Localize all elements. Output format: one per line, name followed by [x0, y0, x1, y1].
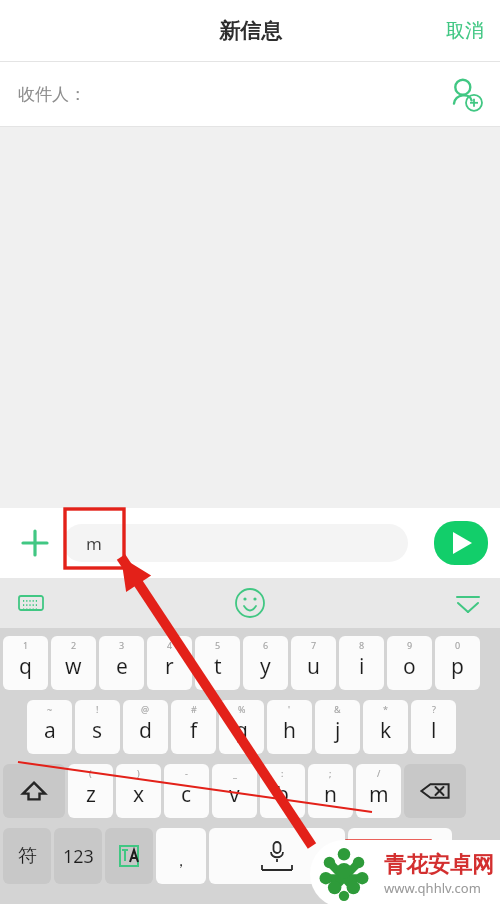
staticText: # [191, 703, 197, 715]
button[interactable]: Send [434, 521, 488, 565]
staticText: / [377, 767, 381, 779]
staticText: % [238, 703, 246, 715]
staticText: m [369, 780, 389, 809]
button[interactable]: Shift [3, 764, 65, 818]
staticText: & [334, 703, 341, 715]
staticText: 6 [263, 639, 269, 651]
staticText: o [403, 652, 416, 681]
button[interactable]: : [260, 764, 305, 818]
button[interactable]: % [219, 700, 264, 754]
staticText: r [165, 652, 174, 681]
button[interactable]: ! [75, 700, 120, 754]
button[interactable]: Add attachment [12, 520, 58, 566]
button[interactable]: ; [308, 764, 353, 818]
staticText: x [133, 780, 145, 809]
button[interactable]: 取消 [430, 5, 500, 57]
button[interactable]: ? [411, 700, 456, 754]
staticText: ? [432, 703, 436, 715]
button[interactable]: Backspace [404, 764, 466, 818]
staticText: e [116, 652, 128, 681]
staticText: ! [96, 703, 99, 715]
staticText: ) [137, 767, 140, 779]
button[interactable]: @ [123, 700, 168, 754]
button[interactable]: 符 [3, 828, 51, 884]
button[interactable]: 5 [195, 636, 240, 690]
button[interactable]: 4 [147, 636, 192, 690]
button[interactable]: ' [267, 700, 312, 754]
staticText: d [139, 716, 152, 745]
staticText: h [283, 716, 296, 745]
staticText: 3 [119, 639, 125, 651]
staticText: 取消 [446, 19, 484, 43]
button[interactable]: Language [105, 828, 153, 884]
button[interactable]: Hide keyboard [448, 583, 488, 623]
button[interactable]: ( [68, 764, 113, 818]
staticText: f [190, 716, 198, 745]
button[interactable]: 1 [3, 636, 48, 690]
button[interactable]: ) [116, 764, 161, 818]
button[interactable]: 9 [387, 636, 432, 690]
staticText: l [431, 716, 437, 745]
staticText: 7 [311, 639, 317, 651]
staticText: v [229, 780, 240, 809]
staticText: a [44, 716, 56, 745]
staticText: 8 [359, 639, 365, 651]
staticText: 1 [23, 639, 29, 651]
staticText: 2 [71, 639, 77, 651]
button[interactable]: _ [212, 764, 257, 818]
staticText: ~ [47, 703, 53, 715]
staticText: z [86, 780, 96, 809]
staticText: ， [173, 851, 189, 871]
button[interactable]: Add contact [446, 74, 486, 114]
button[interactable]: 6 [243, 636, 288, 690]
staticText: 9 [407, 639, 413, 651]
button[interactable]: 7 [291, 636, 336, 690]
button[interactable]: 收件人： [0, 62, 500, 126]
button[interactable]: Keyboard [12, 584, 50, 622]
staticText: 5 [215, 639, 221, 651]
button[interactable]: ， [156, 828, 206, 884]
staticText: 新信息 [219, 18, 282, 44]
button[interactable]: 3 [99, 636, 144, 690]
staticText: 青花安卓网 [384, 851, 494, 879]
staticText: k [380, 716, 392, 745]
staticText: y [260, 652, 271, 681]
button[interactable]: & [315, 700, 360, 754]
button[interactable]: 123 [54, 828, 102, 884]
staticText: u [307, 652, 320, 681]
staticText: _ [233, 767, 237, 779]
staticText: 4 [167, 639, 173, 651]
staticText: ; [329, 767, 332, 779]
button[interactable]: / [356, 764, 401, 818]
staticText: 123 [63, 844, 94, 869]
staticText: s [92, 716, 103, 745]
staticText: c [181, 780, 192, 809]
staticText: www.qhhlv.com [384, 879, 481, 897]
staticText: * [383, 703, 388, 715]
staticText: i [359, 652, 365, 681]
staticText: w [65, 652, 82, 681]
staticText: m [86, 532, 102, 555]
button[interactable]: Space [209, 828, 345, 884]
staticText: 0 [455, 639, 461, 651]
button[interactable]: 2 [51, 636, 96, 690]
staticText: 符 [18, 844, 37, 868]
staticText: @ [141, 703, 150, 715]
staticText: : [281, 767, 284, 779]
button[interactable]: ~ [27, 700, 72, 754]
staticText: 收件人： [18, 84, 86, 105]
button[interactable]: m [63, 524, 408, 562]
button[interactable] [348, 828, 452, 884]
button[interactable]: # [171, 700, 216, 754]
staticText: q [19, 652, 32, 681]
button[interactable]: * [363, 700, 408, 754]
staticText: ' [288, 703, 291, 715]
staticText: - [185, 767, 188, 779]
staticText: t [214, 652, 222, 681]
button[interactable]: - [164, 764, 209, 818]
staticText: n [324, 780, 337, 809]
button[interactable]: 0 [435, 636, 480, 690]
button[interactable]: 8 [339, 636, 384, 690]
button[interactable]: Emoji [230, 583, 270, 623]
staticText: ( [89, 767, 92, 779]
